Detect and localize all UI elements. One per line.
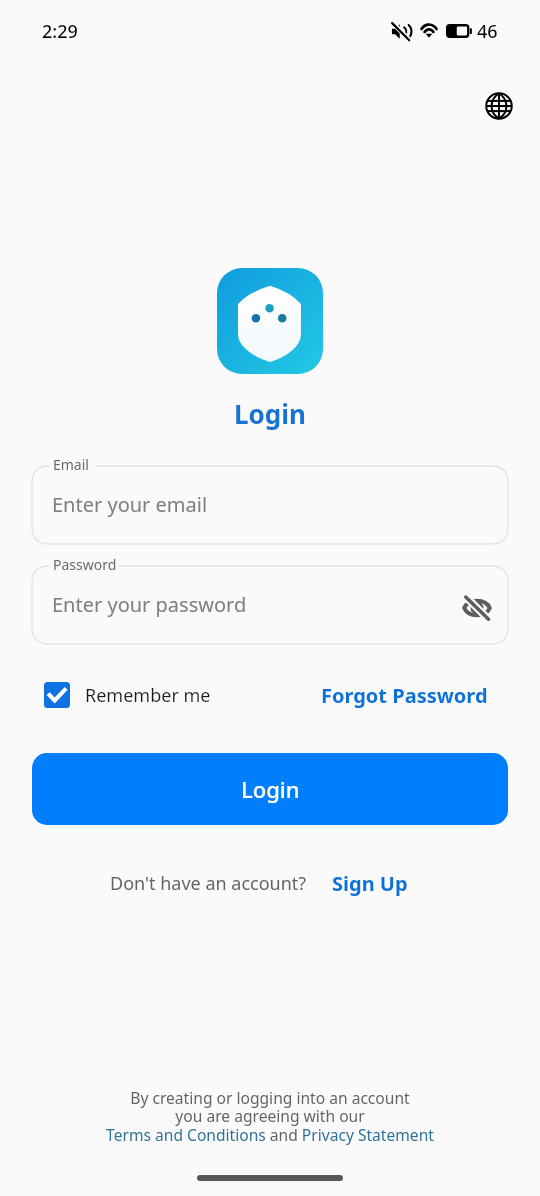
staticText: Login bbox=[241, 774, 300, 804]
staticText: you are agreeing with our bbox=[0, 1105, 540, 1126]
staticText: Password bbox=[53, 555, 117, 574]
staticText: Enter your password bbox=[52, 591, 247, 618]
button[interactable]: Forgot Password bbox=[321, 682, 488, 709]
button[interactable]: Language bbox=[478, 85, 520, 127]
staticText: Login bbox=[0, 396, 540, 431]
staticText: 2:29 bbox=[42, 19, 78, 44]
button[interactable]: Show password bbox=[455, 586, 499, 630]
button[interactable] bbox=[32, 452, 508, 544]
button[interactable]: Remember me bbox=[44, 682, 211, 708]
staticText: Remember me bbox=[85, 683, 211, 708]
button[interactable] bbox=[32, 552, 508, 644]
button[interactable]: Sign Up bbox=[332, 870, 408, 897]
staticText: By creating or logging into an account bbox=[0, 1087, 540, 1108]
staticText: Don't have an account? bbox=[110, 871, 307, 896]
staticText: Email bbox=[53, 455, 89, 474]
staticText: Enter your email bbox=[52, 491, 208, 518]
staticText: Terms and Conditions and Privacy Stateme… bbox=[106, 1124, 434, 1145]
button[interactable]: Login bbox=[32, 753, 508, 825]
button[interactable]: Terms and Conditions and Privacy Stateme… bbox=[0, 1124, 540, 1145]
staticText: 46 bbox=[477, 19, 498, 44]
